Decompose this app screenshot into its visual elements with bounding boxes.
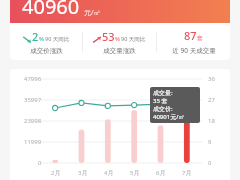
staticText: 87 xyxy=(184,28,197,43)
button[interactable]: 40960 xyxy=(10,0,230,23)
staticText: 53 xyxy=(102,29,115,44)
staticText: 套 xyxy=(197,34,203,42)
staticText: % xyxy=(115,35,120,43)
staticText: 47996 xyxy=(24,75,42,83)
staticText: 36 xyxy=(208,75,215,83)
staticText: 成交量涨跌 xyxy=(103,47,136,55)
staticText: 9 xyxy=(208,138,212,146)
staticText: 成交量: xyxy=(153,89,173,97)
staticText: 成交价: xyxy=(153,105,173,113)
staticText: 90 天同比 xyxy=(121,35,146,43)
staticText: % xyxy=(39,35,44,43)
staticText: 35 套 xyxy=(153,97,168,105)
staticText: 18 xyxy=(208,117,215,125)
staticText: 11999 xyxy=(24,138,42,146)
staticText: 0 xyxy=(38,159,42,167)
staticText: 4月 xyxy=(104,169,114,177)
staticText: 23998 xyxy=(24,117,42,125)
button[interactable]: 87 xyxy=(157,23,230,60)
staticText: 成交价涨跌 xyxy=(30,47,63,55)
staticText: 40901元/㎡ xyxy=(153,113,185,121)
button[interactable]: 2 xyxy=(10,23,82,60)
button[interactable]: 47996 xyxy=(10,69,230,180)
staticText: 0 xyxy=(208,159,212,167)
staticText: 元/㎡ xyxy=(84,8,101,18)
staticText: 90 天同比 xyxy=(45,35,70,43)
staticText: 5月 xyxy=(130,169,140,177)
staticText: 7月 xyxy=(182,169,192,177)
staticText: 近 90 天成交量 xyxy=(172,46,216,55)
staticText: 6月 xyxy=(156,169,166,177)
staticText: 35997 xyxy=(24,96,42,104)
staticText: 2 xyxy=(32,29,39,44)
staticText: 3月 xyxy=(78,169,88,177)
button[interactable]: 53 xyxy=(83,23,156,60)
other: 成交详情 xyxy=(153,89,197,121)
staticText: 27 xyxy=(208,96,215,104)
staticText: 2月 xyxy=(51,169,61,177)
staticText: 40960 xyxy=(22,0,80,20)
